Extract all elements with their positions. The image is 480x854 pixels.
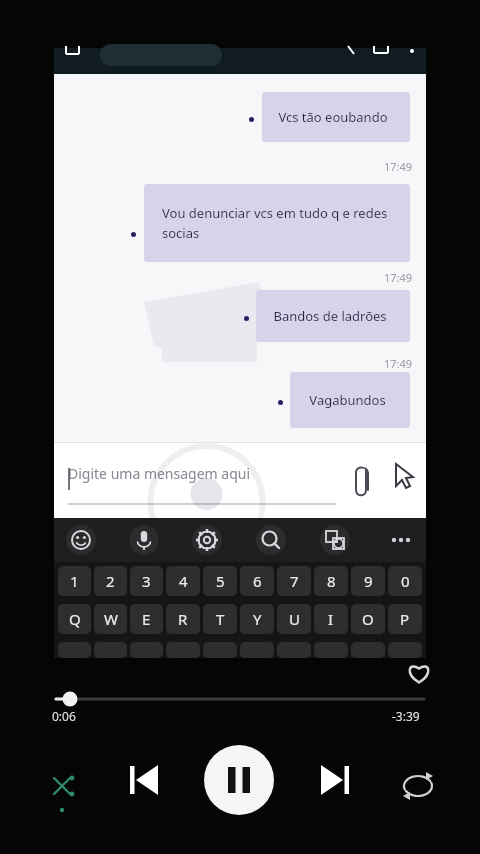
button[interactable]: 9 — [351, 566, 385, 596]
staticText: -3:39 — [392, 708, 420, 724]
staticText: U — [289, 609, 300, 629]
button[interactable] — [94, 642, 127, 658]
staticText: E — [142, 609, 151, 629]
button[interactable]: Bandos de ladrões — [256, 290, 410, 342]
button[interactable]: Previous — [120, 756, 168, 804]
staticText: 5 — [216, 571, 225, 591]
staticText: R — [178, 609, 188, 629]
button[interactable]: T — [203, 604, 237, 634]
button[interactable]: Next — [311, 756, 359, 804]
staticText: 3 — [142, 571, 151, 591]
button[interactable] — [130, 642, 163, 658]
staticText: Vagabundos — [309, 391, 386, 409]
staticText: 2 — [106, 571, 115, 591]
staticText: Vcs tão eoubando — [278, 108, 388, 126]
staticText: P — [400, 609, 410, 629]
button[interactable]: R — [166, 604, 200, 634]
staticText: O — [362, 609, 374, 629]
button[interactable]: Q — [58, 604, 91, 634]
staticText: 4 — [179, 571, 188, 591]
button[interactable]: 1 — [58, 566, 91, 596]
staticText: 0 — [401, 571, 410, 591]
staticText: W — [104, 609, 118, 629]
button[interactable]: 4 — [166, 566, 200, 596]
button[interactable]: Attach — [348, 460, 378, 490]
button[interactable]: Settings — [192, 525, 222, 555]
button[interactable]: 7 — [277, 566, 311, 596]
staticText: 8 — [327, 571, 336, 591]
staticText: 17:49 — [384, 159, 413, 174]
staticText: 6 — [253, 571, 262, 591]
button[interactable]: Pause — [204, 745, 274, 815]
button[interactable]: More options — [384, 523, 418, 557]
button[interactable]: Voice input — [129, 525, 159, 555]
button[interactable]: Favorite — [404, 658, 434, 688]
staticText: 17:49 — [384, 270, 413, 285]
button[interactable] — [240, 642, 274, 658]
staticText: 17:49 — [384, 356, 413, 371]
button[interactable]: Y — [240, 604, 274, 634]
staticText: 0:06 — [52, 708, 76, 724]
staticText: Y — [253, 609, 262, 629]
button[interactable]: Pointer — [390, 460, 418, 488]
button[interactable]: U — [277, 604, 311, 634]
staticText: 9 — [364, 571, 373, 591]
staticText: 1 — [70, 571, 79, 591]
staticText: Bandos de ladrões — [273, 307, 387, 325]
button[interactable]: Digite uma mensagem aqui — [68, 464, 251, 483]
button[interactable]: Repeat — [396, 758, 440, 802]
staticText: Vou denunciar vcs em tudo q e redes soci… — [162, 204, 388, 242]
button[interactable]: E — [130, 604, 163, 634]
staticText: I — [328, 609, 334, 629]
button[interactable]: Translate — [320, 525, 350, 555]
staticText: Q — [69, 609, 81, 629]
button[interactable]: Vagabundos — [290, 372, 410, 428]
button[interactable]: 2 — [94, 566, 127, 596]
button[interactable] — [203, 642, 237, 658]
button[interactable]: 8 — [314, 566, 348, 596]
button[interactable]: O — [351, 604, 385, 634]
staticText: T — [216, 609, 225, 629]
button[interactable] — [166, 642, 200, 658]
button[interactable] — [58, 642, 91, 658]
button[interactable] — [388, 642, 422, 658]
button[interactable]: 0 — [388, 566, 422, 596]
button[interactable]: Shuffle — [40, 758, 84, 802]
button[interactable] — [314, 642, 348, 658]
button[interactable]: 5 — [203, 566, 237, 596]
button[interactable]: P — [388, 604, 422, 634]
button[interactable]: Vcs tão eoubando — [262, 92, 410, 142]
button[interactable]: Search — [256, 525, 286, 555]
button[interactable] — [100, 44, 222, 66]
button[interactable]: Emoji — [66, 525, 96, 555]
button[interactable]: Vou denunciar vcs em tudo q e redes soci… — [144, 184, 410, 262]
button[interactable]: I — [314, 604, 348, 634]
button[interactable] — [277, 642, 311, 658]
button[interactable] — [351, 642, 385, 658]
button[interactable]: 6 — [240, 566, 274, 596]
button[interactable]: 3 — [130, 566, 163, 596]
staticText: 7 — [290, 571, 299, 591]
button[interactable]: W — [94, 604, 127, 634]
